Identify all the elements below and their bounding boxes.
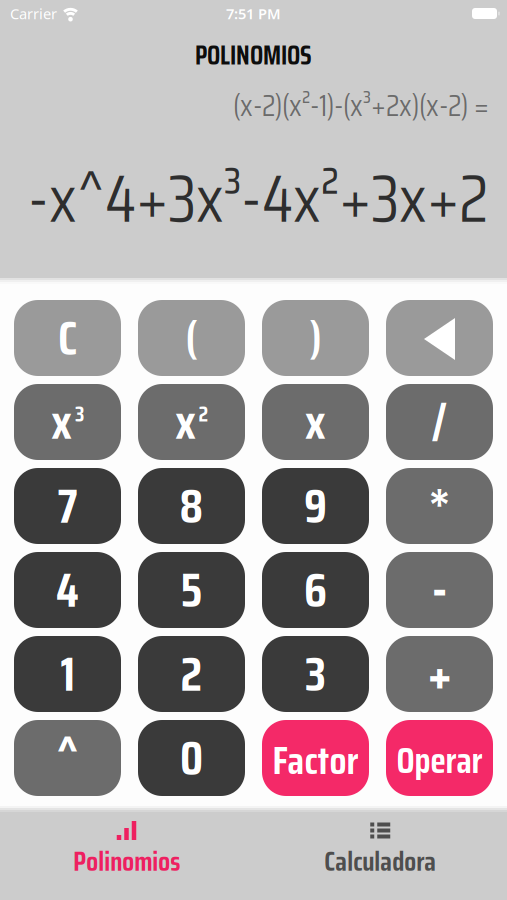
staticText: 4: [56, 552, 79, 628]
staticText: 8: [179, 468, 203, 544]
staticText: -: [431, 548, 447, 632]
button[interactable]: Operar: [386, 720, 493, 796]
button[interactable]: Calculadora: [253, 821, 507, 882]
staticText: Carrier: [10, 4, 57, 23]
staticText: 7:51 PM: [226, 4, 281, 23]
staticText: 7: [57, 468, 77, 544]
staticText: -x^4+3x³-4x²+3x+2: [28, 145, 488, 251]
staticText: x: [175, 384, 196, 460]
staticText: 1: [60, 636, 74, 712]
button[interactable]: (: [138, 300, 245, 376]
button[interactable]: C: [14, 300, 121, 376]
staticText: Operar: [396, 732, 482, 788]
staticText: POLINOMIOS: [195, 35, 312, 76]
button[interactable]: 3: [262, 636, 369, 712]
button[interactable]: Factor: [262, 720, 369, 796]
staticText: ): [309, 304, 321, 372]
button[interactable]: Polinomios: [0, 821, 253, 882]
staticText: x: [51, 384, 72, 460]
staticText: (x-2)(x²-1)-(x³+2x)(x-2) =: [233, 81, 489, 129]
staticText: Polinomios: [73, 840, 180, 882]
button[interactable]: *: [386, 468, 493, 544]
staticText: (: [185, 304, 197, 372]
button[interactable]: x: [14, 384, 121, 460]
staticText: 2: [198, 397, 208, 431]
button[interactable]: 9: [262, 468, 369, 544]
staticText: 5: [180, 552, 202, 628]
staticText: C: [58, 300, 77, 376]
button[interactable]: 4: [14, 552, 121, 628]
staticText: 3: [75, 397, 84, 431]
button[interactable]: 5: [138, 552, 245, 628]
button[interactable]: 2: [138, 636, 245, 712]
staticText: x: [305, 384, 326, 460]
staticText: Factor: [272, 730, 358, 791]
staticText: 0: [180, 720, 203, 796]
staticText: 3: [305, 636, 326, 712]
staticText: ^: [57, 717, 78, 801]
button[interactable]: -: [386, 552, 493, 628]
button[interactable]: 6: [262, 552, 369, 628]
button[interactable]: 0: [138, 720, 245, 796]
button[interactable]: 8: [138, 468, 245, 544]
button[interactable]: ^: [14, 720, 121, 796]
staticText: *: [428, 465, 450, 549]
staticText: 9: [304, 468, 327, 544]
button[interactable]: Borrar: [386, 300, 493, 376]
button[interactable]: +: [386, 636, 493, 712]
staticText: +: [427, 632, 452, 716]
staticText: Calculadora: [324, 840, 436, 882]
staticText: 2: [180, 636, 202, 712]
staticText: 6: [304, 552, 327, 628]
button[interactable]: /: [386, 384, 493, 460]
button[interactable]: x: [138, 384, 245, 460]
button[interactable]: 7: [14, 468, 121, 544]
button[interactable]: ): [262, 300, 369, 376]
button[interactable]: 1: [14, 636, 121, 712]
staticText: /: [431, 384, 447, 460]
button[interactable]: x: [262, 384, 369, 460]
